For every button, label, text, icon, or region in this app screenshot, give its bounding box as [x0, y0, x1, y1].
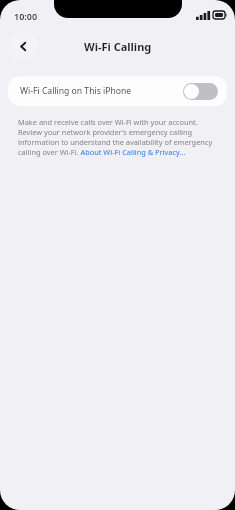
button[interactable]: Wi-Fi Calling toggle, off	[183, 83, 218, 100]
button[interactable]: Wi-Fi Calling on This iPhone	[8, 76, 227, 106]
staticText: Wi-Fi Calling on This iPhone	[20, 85, 132, 97]
staticText: Wi-Fi Calling	[84, 39, 152, 54]
button[interactable]: Make and receive calls over Wi-Fi with y…	[18, 117, 223, 157]
staticText: Make and receive calls over Wi-Fi with y…	[18, 117, 223, 157]
button[interactable]: Back	[8, 31, 38, 61]
staticText: 10:00	[14, 10, 38, 22]
